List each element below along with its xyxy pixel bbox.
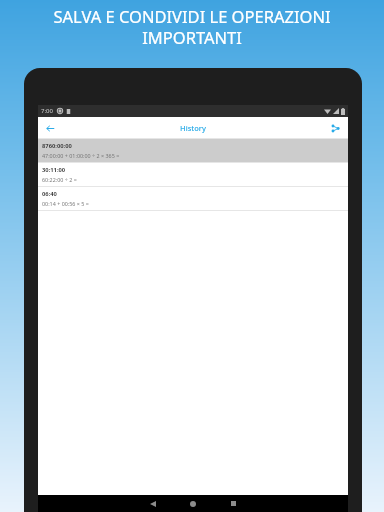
button[interactable]: Share bbox=[325, 118, 345, 138]
staticText: 47:00:00 + 01:00:00 ÷ 2 × 365 = bbox=[42, 152, 120, 159]
staticText: 00:14 + 00:56 × 5 = bbox=[42, 200, 89, 207]
button[interactable]: Back bbox=[133, 495, 173, 512]
staticText: 7:00 bbox=[41, 107, 53, 115]
staticText: 8760:00:00 bbox=[42, 142, 72, 150]
button[interactable]: 06:40 bbox=[38, 187, 348, 210]
staticText: SALVA E CONDIVIDI LE OPERAZIONI IMPORTAN… bbox=[8, 5, 376, 49]
staticText: 60:22:00 ÷ 2 = bbox=[42, 176, 77, 183]
button[interactable]: 8760:00:00 bbox=[38, 139, 348, 162]
button[interactable]: 30:11:00 bbox=[38, 163, 348, 186]
button[interactable]: Recents bbox=[213, 495, 253, 512]
button[interactable]: Back bbox=[40, 118, 60, 138]
staticText: 30:11:00 bbox=[42, 166, 66, 174]
staticText: History bbox=[38, 123, 348, 133]
staticText: 06:40 bbox=[42, 190, 57, 198]
button[interactable]: Home bbox=[173, 495, 213, 512]
